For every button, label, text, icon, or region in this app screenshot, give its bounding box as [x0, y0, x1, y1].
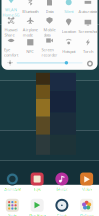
button[interactable]: Location [59, 16, 78, 36]
staticText: Clock [57, 213, 67, 216]
staticText: Airplane mode [23, 27, 38, 38]
staticText: Data [45, 9, 53, 14]
button[interactable]: WLAN [1, 0, 21, 16]
staticText: Gallery [80, 213, 93, 216]
button[interactable]: Tips [25, 172, 50, 192]
button[interactable]: NFC [21, 36, 40, 56]
staticText: Bluetooth [22, 9, 38, 14]
staticText: Hotspot [62, 49, 75, 54]
staticText: WLAN [5, 7, 17, 12]
button[interactable]: Huawei Share [1, 16, 21, 36]
button[interactable]: Gallery [74, 199, 99, 216]
staticText: Video [82, 186, 91, 192]
staticText: Location [62, 29, 76, 34]
staticText: Music [56, 186, 67, 192]
staticText: Huawei Share [5, 27, 18, 38]
staticText: Eye comfort [4, 47, 18, 58]
button[interactable]: Screenshot [78, 16, 97, 36]
button[interactable]: Tools [0, 199, 25, 216]
button[interactable]: Screen recorder [40, 36, 59, 56]
staticText: Tips [34, 186, 41, 192]
button[interactable]: Eye comfort [1, 36, 21, 56]
button[interactable]: Data [40, 0, 59, 16]
button[interactable]: Mobile data [40, 16, 59, 36]
staticText: Auto-rotate [78, 9, 97, 14]
button[interactable]: Brightness settings [87, 60, 91, 65]
staticText: Tools [8, 213, 17, 216]
button[interactable]: Hotspot [59, 36, 78, 56]
staticText: Assistant [4, 186, 20, 192]
button[interactable]: Video [74, 172, 99, 192]
staticText: Screen recorder [41, 47, 57, 58]
button[interactable]: Bluetooth [21, 0, 40, 16]
button[interactable]: Play Store [25, 199, 50, 216]
staticText: Screenshot [78, 29, 97, 34]
staticText: Home-5G [3, 12, 20, 18]
button[interactable]: Torch [78, 36, 97, 56]
button[interactable]: Silent [59, 0, 78, 16]
staticText: Torch [83, 49, 93, 54]
button[interactable]: Airplane mode [21, 16, 40, 36]
staticText: Silent [64, 9, 73, 14]
staticText: Mobile data [43, 27, 55, 38]
button[interactable]: Clock [49, 199, 74, 216]
button[interactable]: Auto-rotate [78, 0, 97, 16]
button[interactable]: Music [49, 172, 74, 192]
button[interactable]: Assistant [0, 172, 25, 192]
staticText: Play Store [29, 213, 46, 216]
staticText: NFC [26, 49, 34, 54]
